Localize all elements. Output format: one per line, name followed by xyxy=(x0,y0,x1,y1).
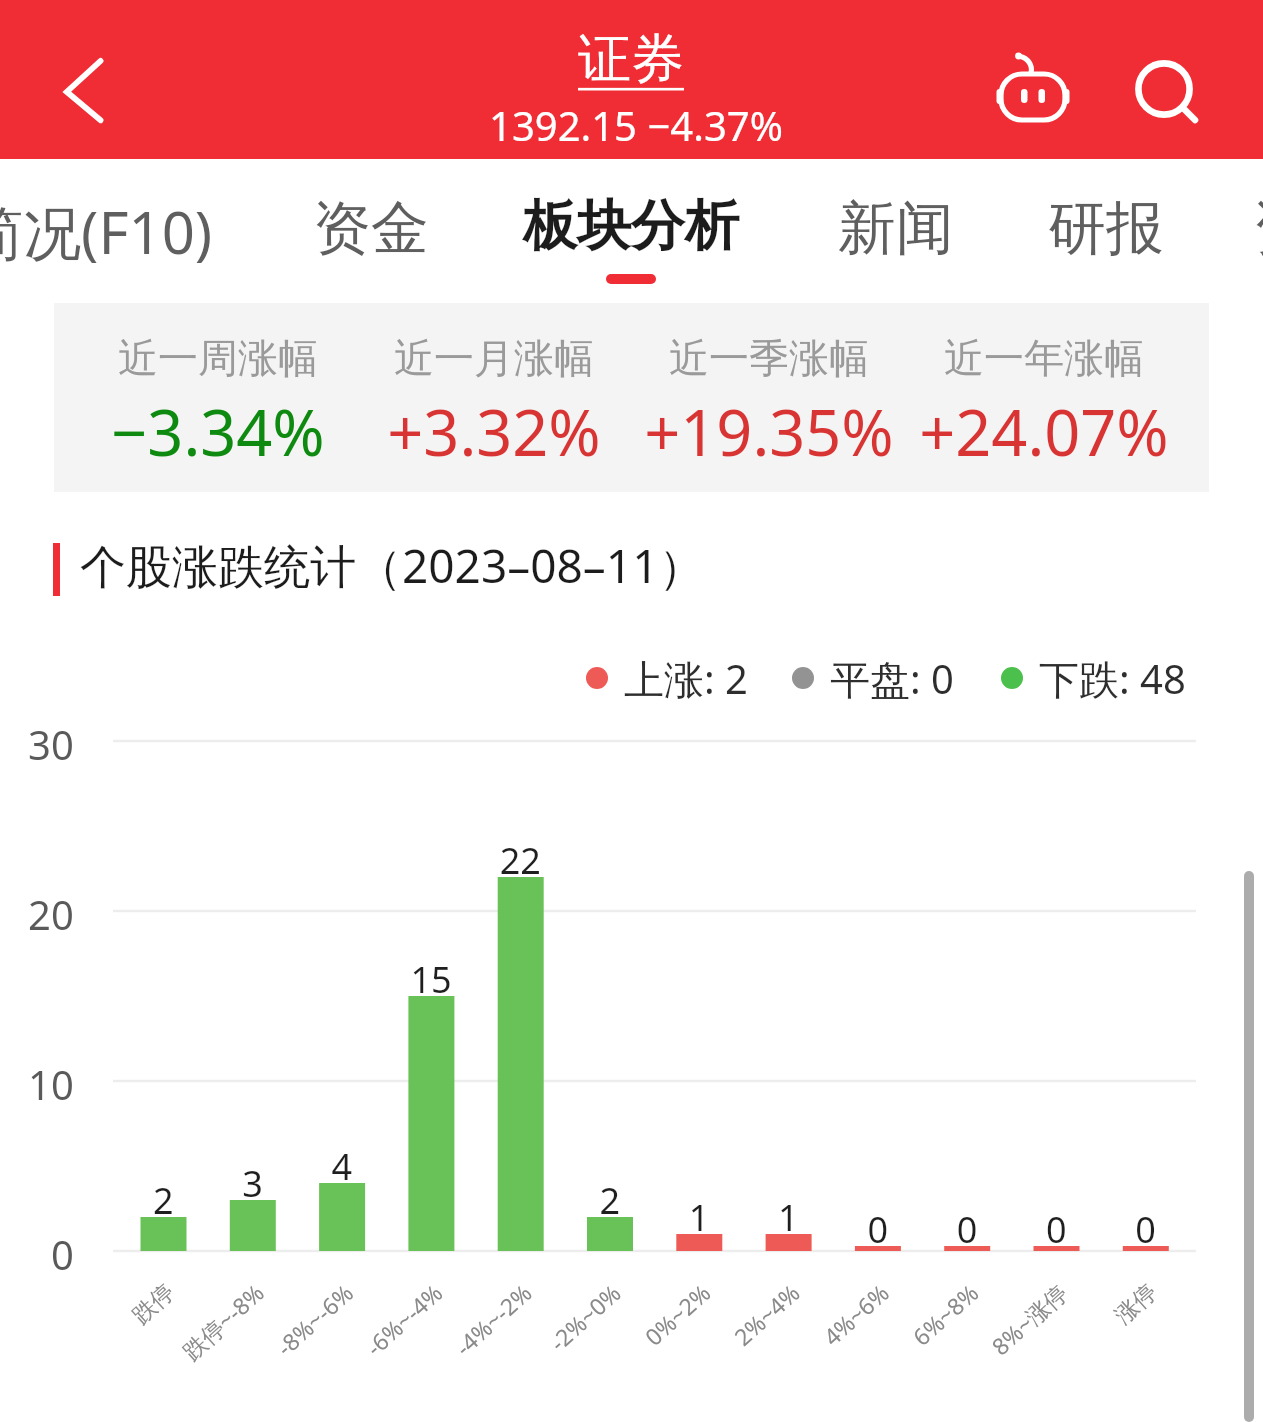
staticText: 上涨: 2 xyxy=(624,651,748,706)
button[interactable]: 板块分析 xyxy=(487,159,775,303)
button[interactable]: 近一月涨幅 xyxy=(359,303,629,492)
button[interactable]: Back xyxy=(24,40,124,140)
staticText: 研报 xyxy=(1048,192,1164,265)
staticText: +24.07% xyxy=(909,389,1179,475)
staticText: 近一季涨幅 xyxy=(634,333,904,383)
staticText: 1392.15 −4.37% xyxy=(489,98,783,152)
staticText: 资金 xyxy=(313,192,429,265)
staticText: 资 xyxy=(1253,192,1263,265)
button[interactable]: 资 xyxy=(1217,159,1263,303)
staticText: 简况(F10) xyxy=(0,192,213,271)
staticText: 个股涨跌统计（2023–08–11） xyxy=(80,534,705,597)
button[interactable]: 近一年涨幅 xyxy=(909,303,1179,492)
button[interactable]: Search xyxy=(1114,39,1214,139)
button[interactable]: 下跌: 48 xyxy=(1001,650,1191,706)
button[interactable]: 新闻 xyxy=(802,159,990,303)
staticText: 新闻 xyxy=(838,192,954,265)
button[interactable]: Assistant xyxy=(976,33,1076,133)
button[interactable]: 近一周涨幅 xyxy=(83,303,353,492)
staticText: 证券 xyxy=(578,26,684,93)
button[interactable]: 上涨: 2 xyxy=(586,650,748,706)
button[interactable]: 简况(F10) xyxy=(0,159,249,303)
button[interactable]: 资金 xyxy=(277,159,465,303)
staticText: 近一周涨幅 xyxy=(83,333,353,383)
staticText: +3.32% xyxy=(359,389,629,475)
button[interactable]: 平盘: 0 xyxy=(792,650,954,706)
staticText: −3.34% xyxy=(83,389,353,475)
button[interactable]: 研报 xyxy=(1012,159,1200,303)
staticText: 近一月涨幅 xyxy=(359,333,629,383)
staticText: 近一年涨幅 xyxy=(909,333,1179,383)
button[interactable]: 近一季涨幅 xyxy=(634,303,904,492)
staticText: 板块分析 xyxy=(523,192,739,260)
staticText: 下跌: 48 xyxy=(1039,651,1186,706)
staticText: 平盘: 0 xyxy=(830,651,954,706)
staticText: +19.35% xyxy=(634,389,904,475)
